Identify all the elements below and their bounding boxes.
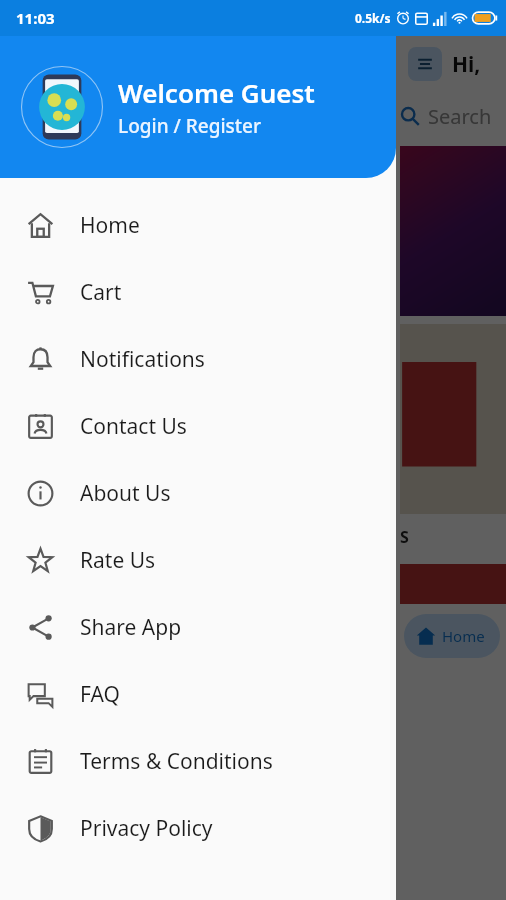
button[interactable]: About Us (0, 460, 396, 527)
button[interactable]: Home (0, 192, 396, 259)
button[interactable]: Welcome Guest (0, 36, 396, 178)
button[interactable]: Notifications (0, 326, 396, 393)
staticText: Search (428, 103, 492, 130)
staticText: Cart (80, 278, 122, 307)
button[interactable]: Contact Us (0, 393, 396, 460)
staticText: Welcome Guest (118, 75, 315, 110)
button[interactable]: FAQ (0, 661, 396, 728)
staticText: Hi, Th (452, 50, 496, 79)
button[interactable]: Cart (0, 259, 396, 326)
staticText: Rate Us (80, 546, 156, 575)
staticText: About Us (80, 479, 171, 508)
staticText: 0.5k/s (355, 10, 391, 26)
staticText: S (400, 526, 409, 548)
staticText: Home (80, 211, 140, 240)
staticText: Terms & Conditions (80, 747, 273, 776)
staticText: Share App (80, 613, 182, 642)
button[interactable]: Terms & Conditions (0, 728, 396, 795)
button[interactable]: Rate Us (0, 527, 396, 594)
button[interactable]: Share App (0, 594, 396, 661)
button[interactable]: Home (404, 614, 500, 658)
button[interactable]: Privacy Policy (0, 795, 396, 862)
staticText: FAQ (80, 680, 120, 709)
staticText: 11:03 (16, 8, 55, 28)
staticText: Privacy Policy (80, 814, 213, 843)
staticText: Home (442, 626, 485, 646)
staticText: Notifications (80, 345, 205, 374)
button[interactable]: Open navigation menu (408, 47, 442, 81)
staticText: Contact Us (80, 412, 187, 441)
staticText: Login / Register (118, 113, 262, 139)
